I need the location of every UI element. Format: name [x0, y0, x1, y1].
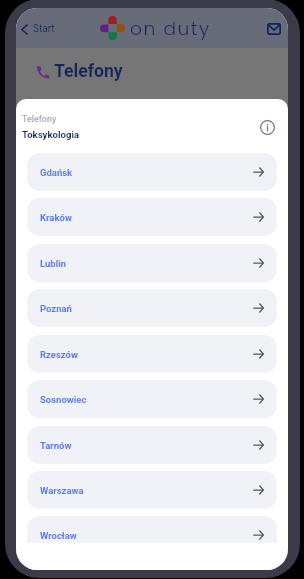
button[interactable]: Lublin [27, 244, 277, 282]
button[interactable]: Tarnów [27, 426, 277, 464]
button[interactable]: Kraków [27, 198, 277, 236]
staticText: Start [33, 23, 55, 35]
button[interactable]: Start [19, 17, 57, 41]
staticText: Gdańsk [40, 167, 73, 178]
button[interactable]: Rzeszów [27, 335, 277, 373]
staticText: Telefony [22, 114, 57, 125]
button[interactable]: Poznań [27, 289, 277, 327]
button[interactable]: Warszawa [27, 471, 277, 509]
button[interactable]: Information [257, 117, 278, 138]
staticText: Warszawa [40, 485, 84, 496]
staticText: Tarnów [40, 440, 72, 451]
staticText: Rzeszów [40, 349, 78, 360]
button[interactable]: Sosnowiec [27, 380, 277, 418]
staticText: Wrocław [40, 530, 77, 541]
staticText: Kraków [40, 212, 72, 223]
staticText: Sosnowiec [40, 394, 87, 405]
button[interactable]: Wrocław [27, 516, 277, 543]
staticText: Lublin [40, 258, 67, 269]
staticText: Telefony [54, 61, 123, 82]
staticText: on duty [130, 15, 211, 41]
staticText: Toksykologia [22, 129, 80, 140]
button[interactable]: Gdańsk [27, 153, 277, 191]
button[interactable]: Messages [263, 19, 285, 39]
staticText: Poznań [40, 303, 72, 314]
